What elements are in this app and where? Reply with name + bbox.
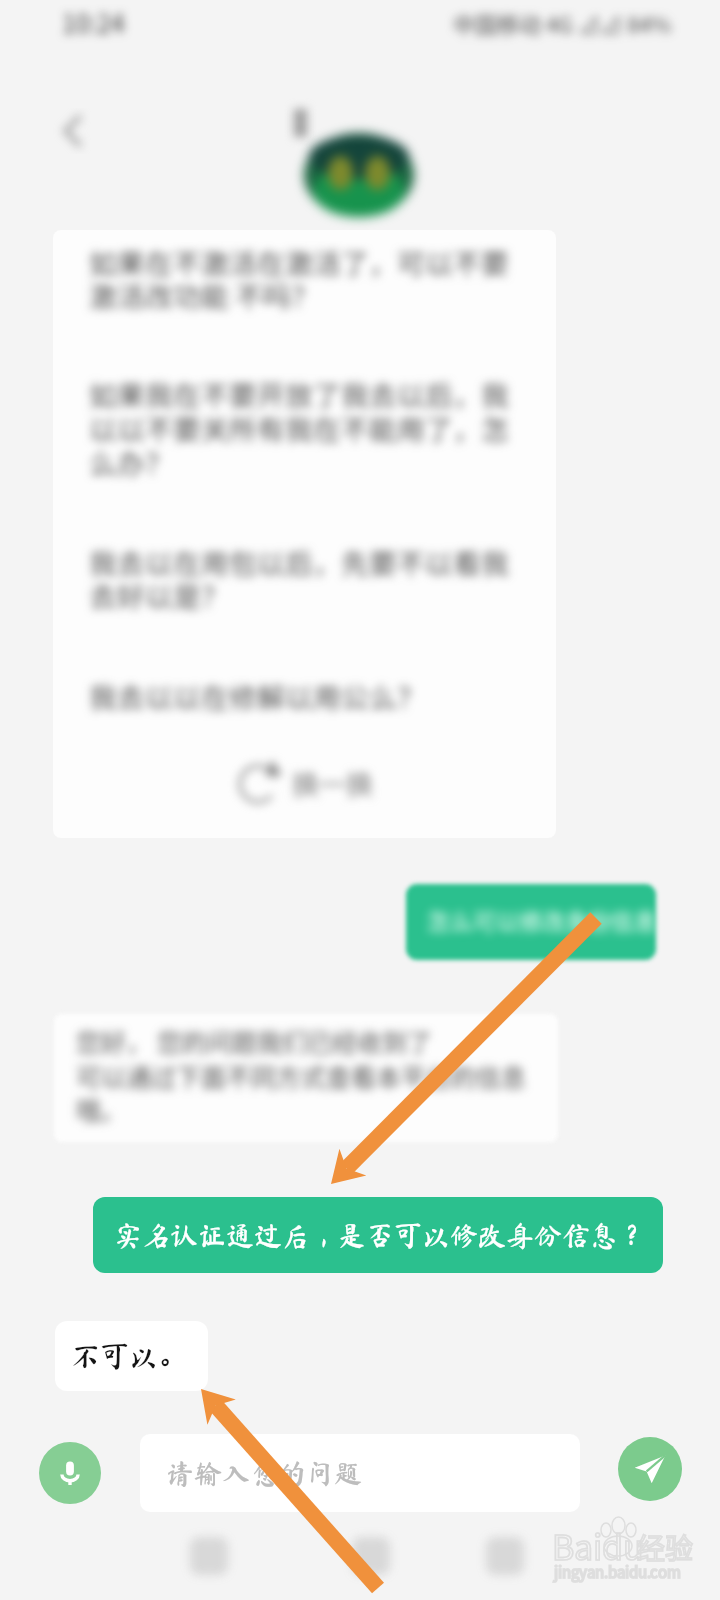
button[interactable]: Back (47, 106, 97, 156)
button[interactable] (54, 1014, 558, 1142)
button[interactable] (55, 1321, 208, 1391)
button[interactable] (53, 230, 556, 838)
button[interactable]: Send (618, 1437, 682, 1501)
button[interactable] (93, 1197, 663, 1273)
button[interactable] (406, 884, 656, 960)
button[interactable]: Voice input (39, 1442, 101, 1504)
button[interactable] (140, 1434, 580, 1512)
